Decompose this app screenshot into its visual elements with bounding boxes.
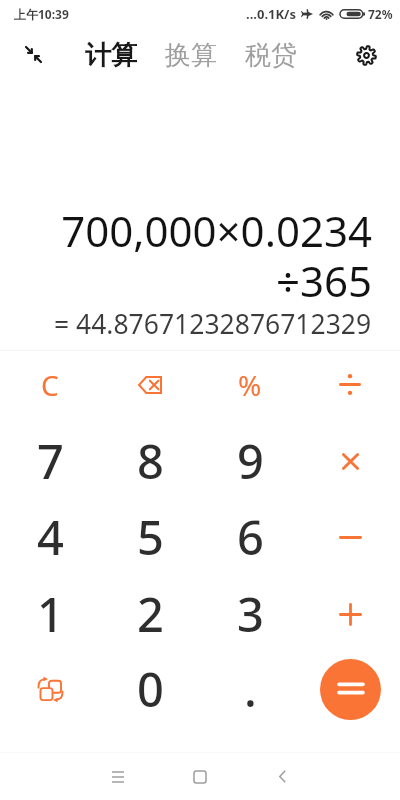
button[interactable]: 5: [100, 498, 200, 574]
button[interactable]: 1: [0, 574, 100, 650]
staticText: 8: [137, 429, 164, 493]
button[interactable]: Subtract: [300, 498, 400, 574]
button[interactable]: Add: [300, 574, 400, 650]
button[interactable]: 3: [200, 574, 300, 650]
other: Add: [339, 603, 362, 626]
staticText: 0: [137, 657, 164, 721]
staticText: 3: [237, 582, 264, 646]
staticText: 700,000×0.0234 ÷365: [61, 202, 372, 310]
button[interactable]: 4: [0, 498, 100, 574]
staticText: 1: [37, 582, 64, 646]
staticText: 6: [237, 505, 264, 569]
staticText: ...0.1K/s: [246, 5, 297, 23]
other: Divide: [339, 374, 361, 395]
staticText: %: [238, 366, 262, 404]
staticText: 9: [237, 429, 264, 493]
staticText: 换算: [165, 39, 217, 72]
other: Backspace: [138, 376, 162, 394]
staticText: C: [41, 366, 59, 404]
button[interactable]: 换算: [151, 33, 231, 78]
staticText: 7: [37, 429, 64, 493]
staticText: 计算: [85, 39, 137, 72]
staticText: 2: [137, 582, 164, 646]
staticText: 上午10:39: [14, 6, 69, 22]
button[interactable]: 9: [200, 422, 300, 498]
other: Multiply: [342, 453, 359, 470]
button[interactable]: C: [0, 351, 100, 422]
other: Equals: [320, 659, 381, 720]
button[interactable]: %: [200, 351, 300, 422]
button[interactable]: Back: [241, 753, 323, 800]
button[interactable]: 0: [100, 650, 200, 726]
button[interactable]: .: [200, 650, 300, 726]
button[interactable]: Collapse: [17, 40, 49, 72]
button[interactable]: Convert: [0, 650, 100, 726]
staticText: 4: [37, 505, 64, 569]
staticText: 5: [137, 505, 164, 569]
button[interactable]: Multiply: [300, 422, 400, 498]
staticText: .: [244, 657, 257, 721]
button[interactable]: Home: [159, 753, 241, 800]
staticText: = 44.87671232876712329: [54, 306, 372, 342]
button[interactable]: Equals: [300, 650, 400, 726]
other: Convert: [38, 678, 63, 701]
button[interactable]: Backspace: [100, 351, 200, 422]
button[interactable]: Divide: [300, 351, 400, 422]
button[interactable]: 计算: [71, 33, 151, 78]
button[interactable]: Recent apps: [77, 753, 159, 800]
staticText: 72%: [368, 6, 393, 22]
staticText: 税贷: [245, 39, 297, 72]
button[interactable]: 8: [100, 422, 200, 498]
button[interactable]: 7: [0, 422, 100, 498]
button[interactable]: 税贷: [231, 33, 311, 78]
button[interactable]: 2: [100, 574, 200, 650]
button[interactable]: 6: [200, 498, 300, 574]
button[interactable]: Settings: [350, 40, 382, 72]
other: Subtract: [339, 527, 362, 548]
